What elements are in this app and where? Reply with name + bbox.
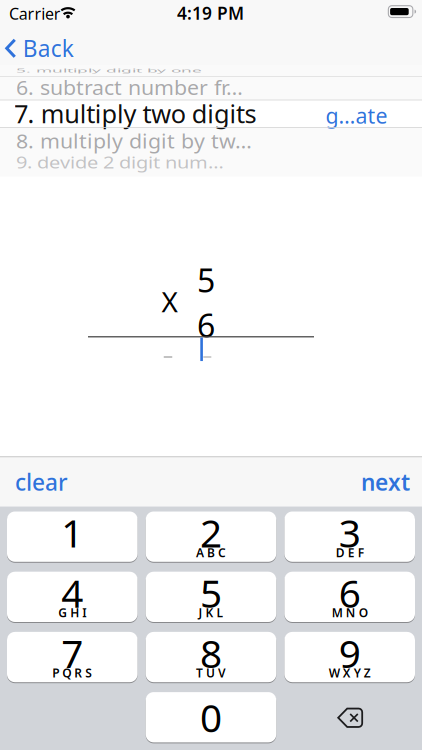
button[interactable]: 1 xyxy=(7,511,138,563)
staticText: A B C xyxy=(196,544,226,560)
staticText: J K L xyxy=(198,605,223,621)
staticText: 0 xyxy=(200,692,222,743)
staticText: M N O xyxy=(332,605,368,621)
staticText: Back xyxy=(23,33,74,63)
staticText: 9. devide 2 digit num… xyxy=(16,149,224,176)
staticText: 7. multiply two digits xyxy=(14,97,256,130)
staticText: clear xyxy=(15,467,68,497)
staticText: 3 xyxy=(339,507,361,558)
staticText: g…ate xyxy=(325,101,387,130)
staticText: G H I xyxy=(58,605,86,621)
button[interactable]: 6 xyxy=(284,572,415,623)
staticText: W X Y Z xyxy=(329,665,371,681)
staticText: X xyxy=(161,283,177,320)
button[interactable]: Delete xyxy=(284,693,415,743)
staticText: 1 xyxy=(61,507,83,558)
staticText: Carrier xyxy=(9,3,61,24)
staticText: 2 xyxy=(200,507,222,558)
button[interactable]: 5 xyxy=(146,572,276,623)
staticText: 9 xyxy=(339,627,361,678)
button[interactable]: Back xyxy=(5,33,74,63)
button[interactable]: 4 xyxy=(7,572,138,623)
button[interactable]: clear xyxy=(15,465,68,499)
button[interactable]: 0 xyxy=(146,692,276,743)
button[interactable]: 3 xyxy=(284,511,415,563)
staticText: 6. subtract number fr… xyxy=(16,73,243,102)
staticText: 5 xyxy=(200,567,222,618)
button[interactable]: 7 xyxy=(7,632,138,683)
staticText: 6 xyxy=(197,304,215,346)
staticText: 7 xyxy=(61,627,83,678)
staticText: 4 xyxy=(61,567,83,618)
staticText: 8 xyxy=(200,627,222,678)
button[interactable]: 9 xyxy=(284,632,415,683)
staticText: next xyxy=(361,467,410,497)
button[interactable]: 8 xyxy=(146,632,276,683)
staticText: 6 xyxy=(339,567,361,618)
staticText: P Q R S xyxy=(52,665,92,681)
staticText: T U V xyxy=(196,665,226,681)
staticText: D E F xyxy=(336,544,364,560)
staticText: 5 xyxy=(197,259,215,301)
staticText: 5. multiply digit by one xyxy=(16,59,202,82)
button[interactable]: g…ate xyxy=(325,101,387,130)
staticText: 8. multiply digit by tw… xyxy=(16,127,252,155)
staticText: 4:19 PM xyxy=(177,1,244,24)
button[interactable]: 2 xyxy=(146,511,276,563)
button[interactable]: next xyxy=(361,465,410,499)
